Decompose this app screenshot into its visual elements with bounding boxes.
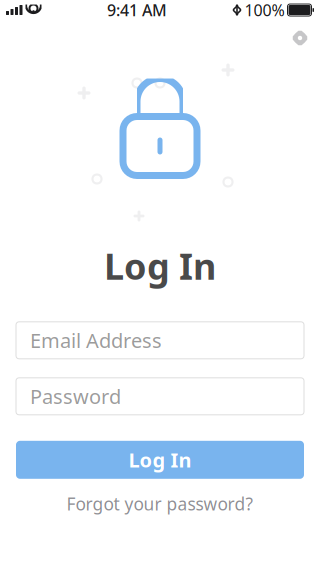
button[interactable]: Forgot your password? bbox=[16, 491, 304, 517]
staticText: 100% bbox=[244, 0, 284, 21]
button[interactable]: Log In bbox=[16, 441, 304, 479]
button[interactable]: Email Address bbox=[16, 322, 304, 359]
staticText: Password bbox=[30, 383, 121, 410]
button[interactable]: Password bbox=[16, 378, 304, 415]
staticText: Log In bbox=[104, 242, 216, 290]
staticText: 9:41 AM bbox=[107, 0, 167, 21]
button[interactable]: Settings bbox=[280, 20, 320, 56]
staticText: Forgot your password? bbox=[66, 492, 253, 515]
staticText: Log In bbox=[128, 446, 191, 473]
staticText: Email Address bbox=[30, 327, 162, 354]
